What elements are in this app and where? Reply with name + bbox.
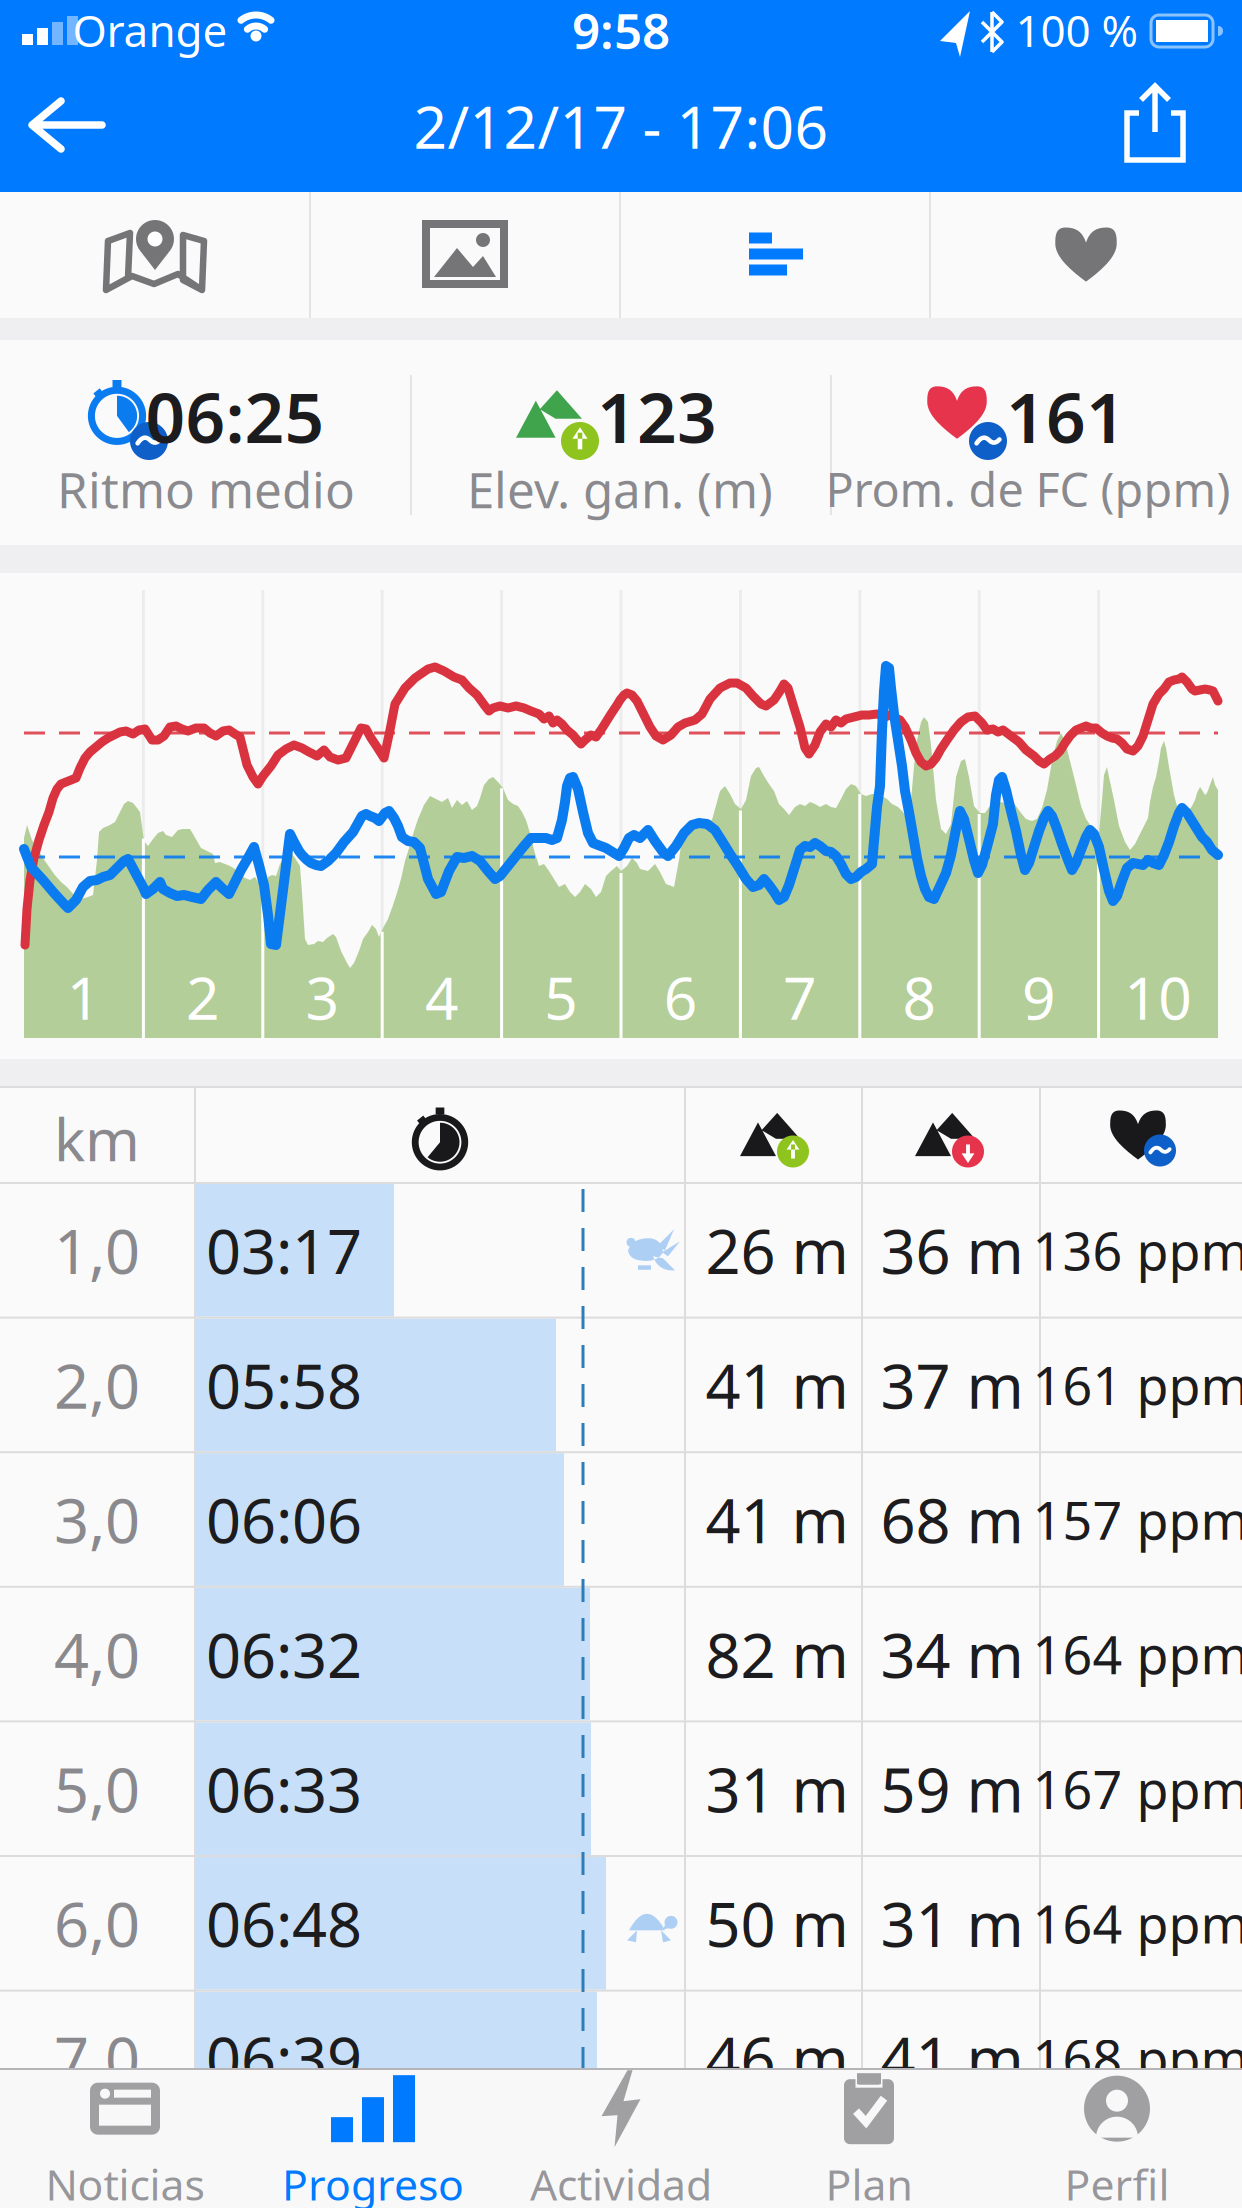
staticText: km (54, 1099, 140, 1177)
staticText: 41 m (705, 1479, 848, 1560)
staticText: Orange (72, 1, 227, 59)
staticText: 46 m (705, 2017, 848, 2099)
staticText: 7,0 (54, 2017, 140, 2099)
staticText: 59 m (880, 1748, 1023, 1829)
staticText: 164 ppm (1032, 1620, 1242, 1689)
button[interactable]: Photos (311, 191, 619, 317)
staticText: 136 ppm (1032, 1216, 1242, 1285)
staticText: 06:32 (206, 1613, 362, 1695)
staticText: 167 ppm (1032, 1754, 1242, 1823)
button[interactable]: Statistics (622, 191, 930, 317)
staticText: 5 (544, 958, 578, 1036)
staticText: 34 m (880, 1613, 1023, 1695)
button[interactable]: Actividad (497, 2075, 745, 2207)
staticText: 3 (305, 958, 339, 1036)
staticText: Ritmo medio (57, 456, 355, 522)
staticText: 5,0 (54, 1748, 140, 1829)
staticText: 157 ppm (1032, 1485, 1242, 1554)
button[interactable]: Perfil (993, 2075, 1241, 2207)
staticText: 37 m (880, 1344, 1023, 1426)
staticText: 4 (425, 958, 459, 1036)
staticText: 8 (902, 958, 936, 1036)
staticText: 6 (664, 958, 698, 1036)
button[interactable]: Plan (745, 2075, 993, 2207)
staticText: 123 (597, 370, 717, 462)
staticText: 06:25 (145, 370, 324, 462)
staticText: 7 (783, 958, 817, 1036)
button[interactable]: Map (1, 191, 309, 317)
staticText: Progreso (282, 2156, 464, 2208)
staticText: 36 m (880, 1210, 1023, 1291)
staticText: 03:17 (206, 1210, 362, 1291)
staticText: 2/12/17 - 17:06 (413, 87, 828, 165)
staticText: 68 m (880, 1479, 1023, 1560)
staticText: 161 ppm (1032, 1350, 1242, 1419)
staticText: 9:58 (572, 0, 670, 63)
staticText: 06:39 (206, 2017, 362, 2099)
button[interactable]: Back (16, 92, 116, 158)
staticText: 06:06 (206, 1479, 362, 1560)
staticText: 1 (67, 958, 101, 1036)
staticText: 05:58 (206, 1344, 362, 1426)
staticText: 31 m (705, 1748, 848, 1829)
staticText: 50 m (705, 1883, 848, 1964)
staticText: Plan (825, 2156, 912, 2208)
staticText: 06:48 (206, 1883, 362, 1964)
staticText: 10 (1124, 958, 1192, 1036)
staticText: Noticias (45, 2156, 204, 2208)
button[interactable]: Noticias (1, 2075, 249, 2207)
staticText: Perfil (1064, 2156, 1169, 2208)
staticText: 100 % (1015, 1, 1138, 59)
staticText: 1,0 (54, 1210, 140, 1291)
staticText: 41 m (705, 1344, 848, 1426)
staticText: 2 (186, 958, 220, 1036)
staticText: 168 ppm (1032, 2023, 1242, 2092)
staticText: 3,0 (54, 1479, 140, 1560)
button[interactable]: Share (1122, 83, 1188, 165)
staticText: 164 ppm (1032, 1889, 1242, 1958)
staticText: 06:33 (206, 1748, 362, 1829)
staticText: 41 m (880, 2017, 1023, 2099)
staticText: 6,0 (54, 1883, 140, 1964)
staticText: 2,0 (54, 1344, 140, 1426)
staticText: 31 m (880, 1883, 1023, 1964)
button[interactable]: Like (932, 191, 1240, 317)
staticText: 26 m (705, 1210, 848, 1291)
staticText: 4,0 (54, 1613, 140, 1695)
staticText: 9 (1022, 958, 1056, 1036)
button[interactable]: Progreso (249, 2075, 497, 2207)
staticText: 82 m (705, 1613, 848, 1695)
staticText: Prom. de FC (ppm) (825, 458, 1230, 520)
staticText: Actividad (530, 2156, 712, 2208)
staticText: 161 (1006, 370, 1126, 462)
staticText: Elev. gan. (m) (467, 456, 773, 522)
